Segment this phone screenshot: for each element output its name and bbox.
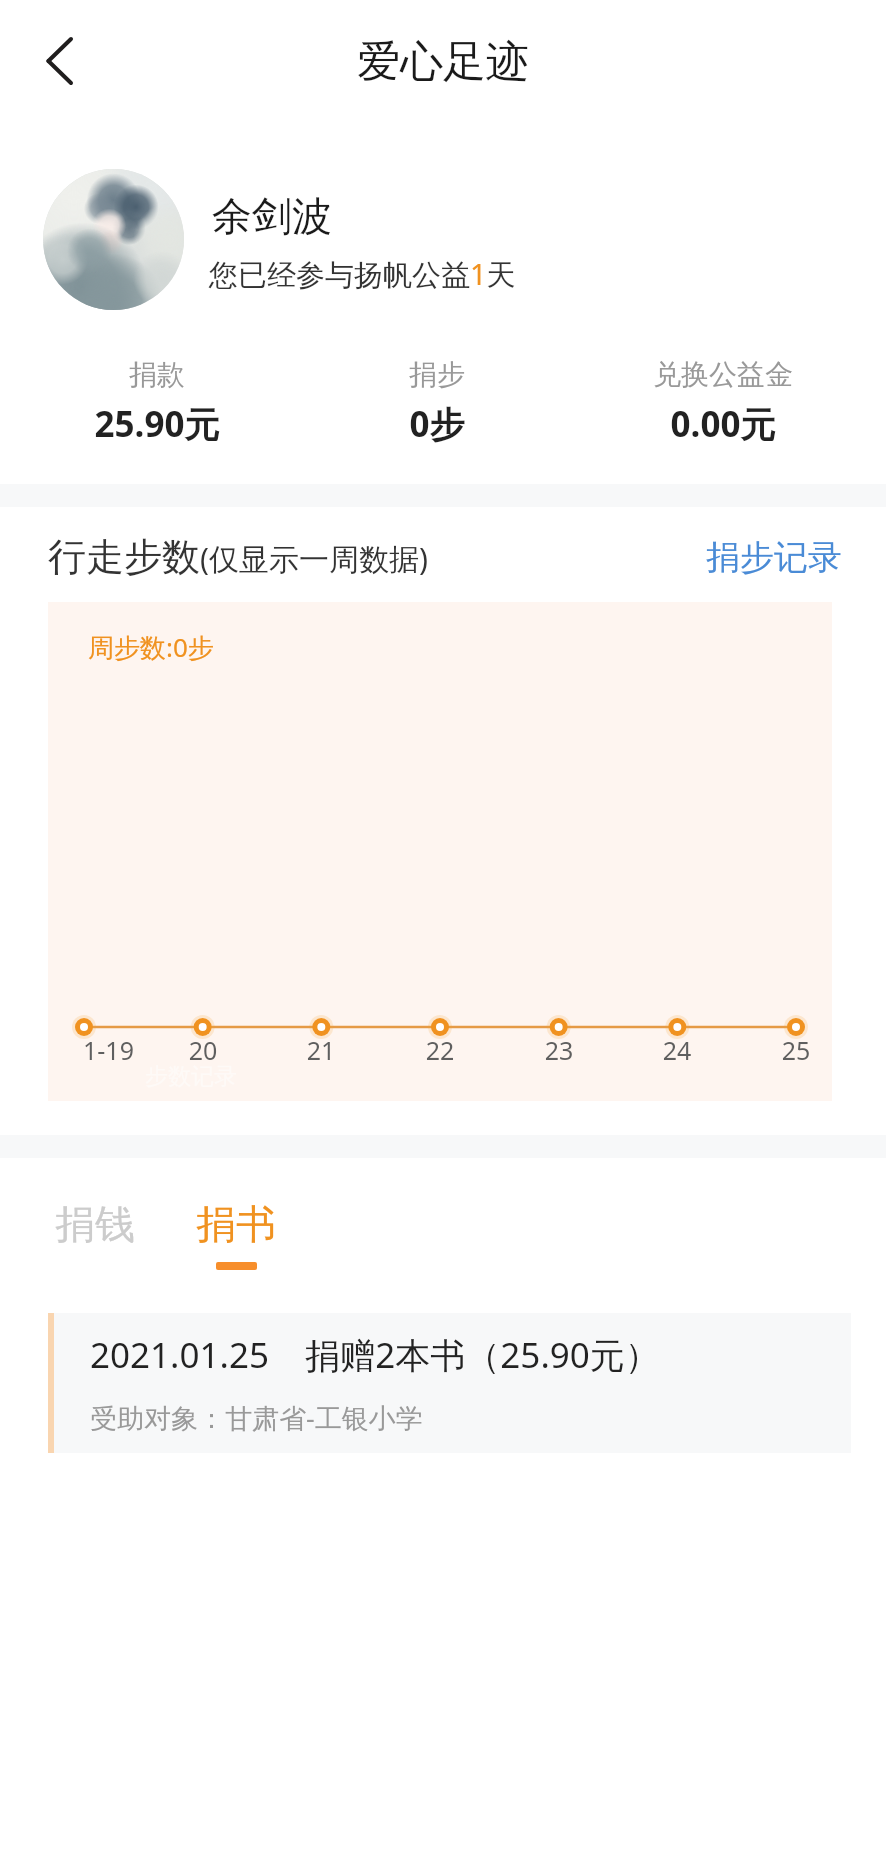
staticText: 0.00元	[593, 400, 853, 448]
staticText: 捐步记录	[706, 536, 842, 579]
button[interactable]: 捐步	[307, 357, 567, 448]
staticText: 捐步	[307, 357, 567, 392]
staticText: 行走步数(仅显示一周数据)	[48, 533, 428, 581]
button[interactable]: 捐钱	[47, 1199, 143, 1262]
staticText: 0步	[307, 400, 567, 448]
staticText: 20	[163, 1033, 243, 1067]
button[interactable]: 兑换公益金	[593, 357, 853, 448]
staticText: 23	[519, 1033, 599, 1067]
button[interactable]: Avatar	[43, 169, 184, 310]
staticText: 22	[400, 1033, 480, 1067]
staticText: 25.90元	[27, 400, 287, 448]
staticText: 捐钱	[55, 1199, 135, 1249]
staticText: 25	[756, 1033, 836, 1067]
staticText: 1-19	[83, 1033, 163, 1067]
button[interactable]: 捐款	[27, 357, 287, 448]
staticText: 周步数:0步	[88, 629, 214, 665]
staticText: 受助对象：甘肃省-工银小学	[90, 1399, 423, 1436]
button[interactable]: 捐步记录	[694, 524, 854, 591]
button[interactable]: 捐书	[188, 1199, 284, 1270]
staticText: 兑换公益金	[593, 357, 853, 392]
staticText: 21	[281, 1033, 361, 1067]
staticText: 余剑波	[212, 191, 332, 241]
button[interactable]: Back	[29, 30, 89, 90]
staticText: 捐款	[27, 357, 287, 392]
staticText: 24	[637, 1033, 717, 1067]
staticText: 2021.01.25 捐赠2本书（25.90元）	[90, 1331, 660, 1379]
staticText: 爱心足迹	[357, 35, 529, 89]
staticText: 捐书	[196, 1199, 276, 1249]
button[interactable]: 2021.01.25 捐赠2本书（25.90元）	[48, 1313, 851, 1453]
staticText: 您已经参与扬帆公益1天	[209, 254, 516, 294]
